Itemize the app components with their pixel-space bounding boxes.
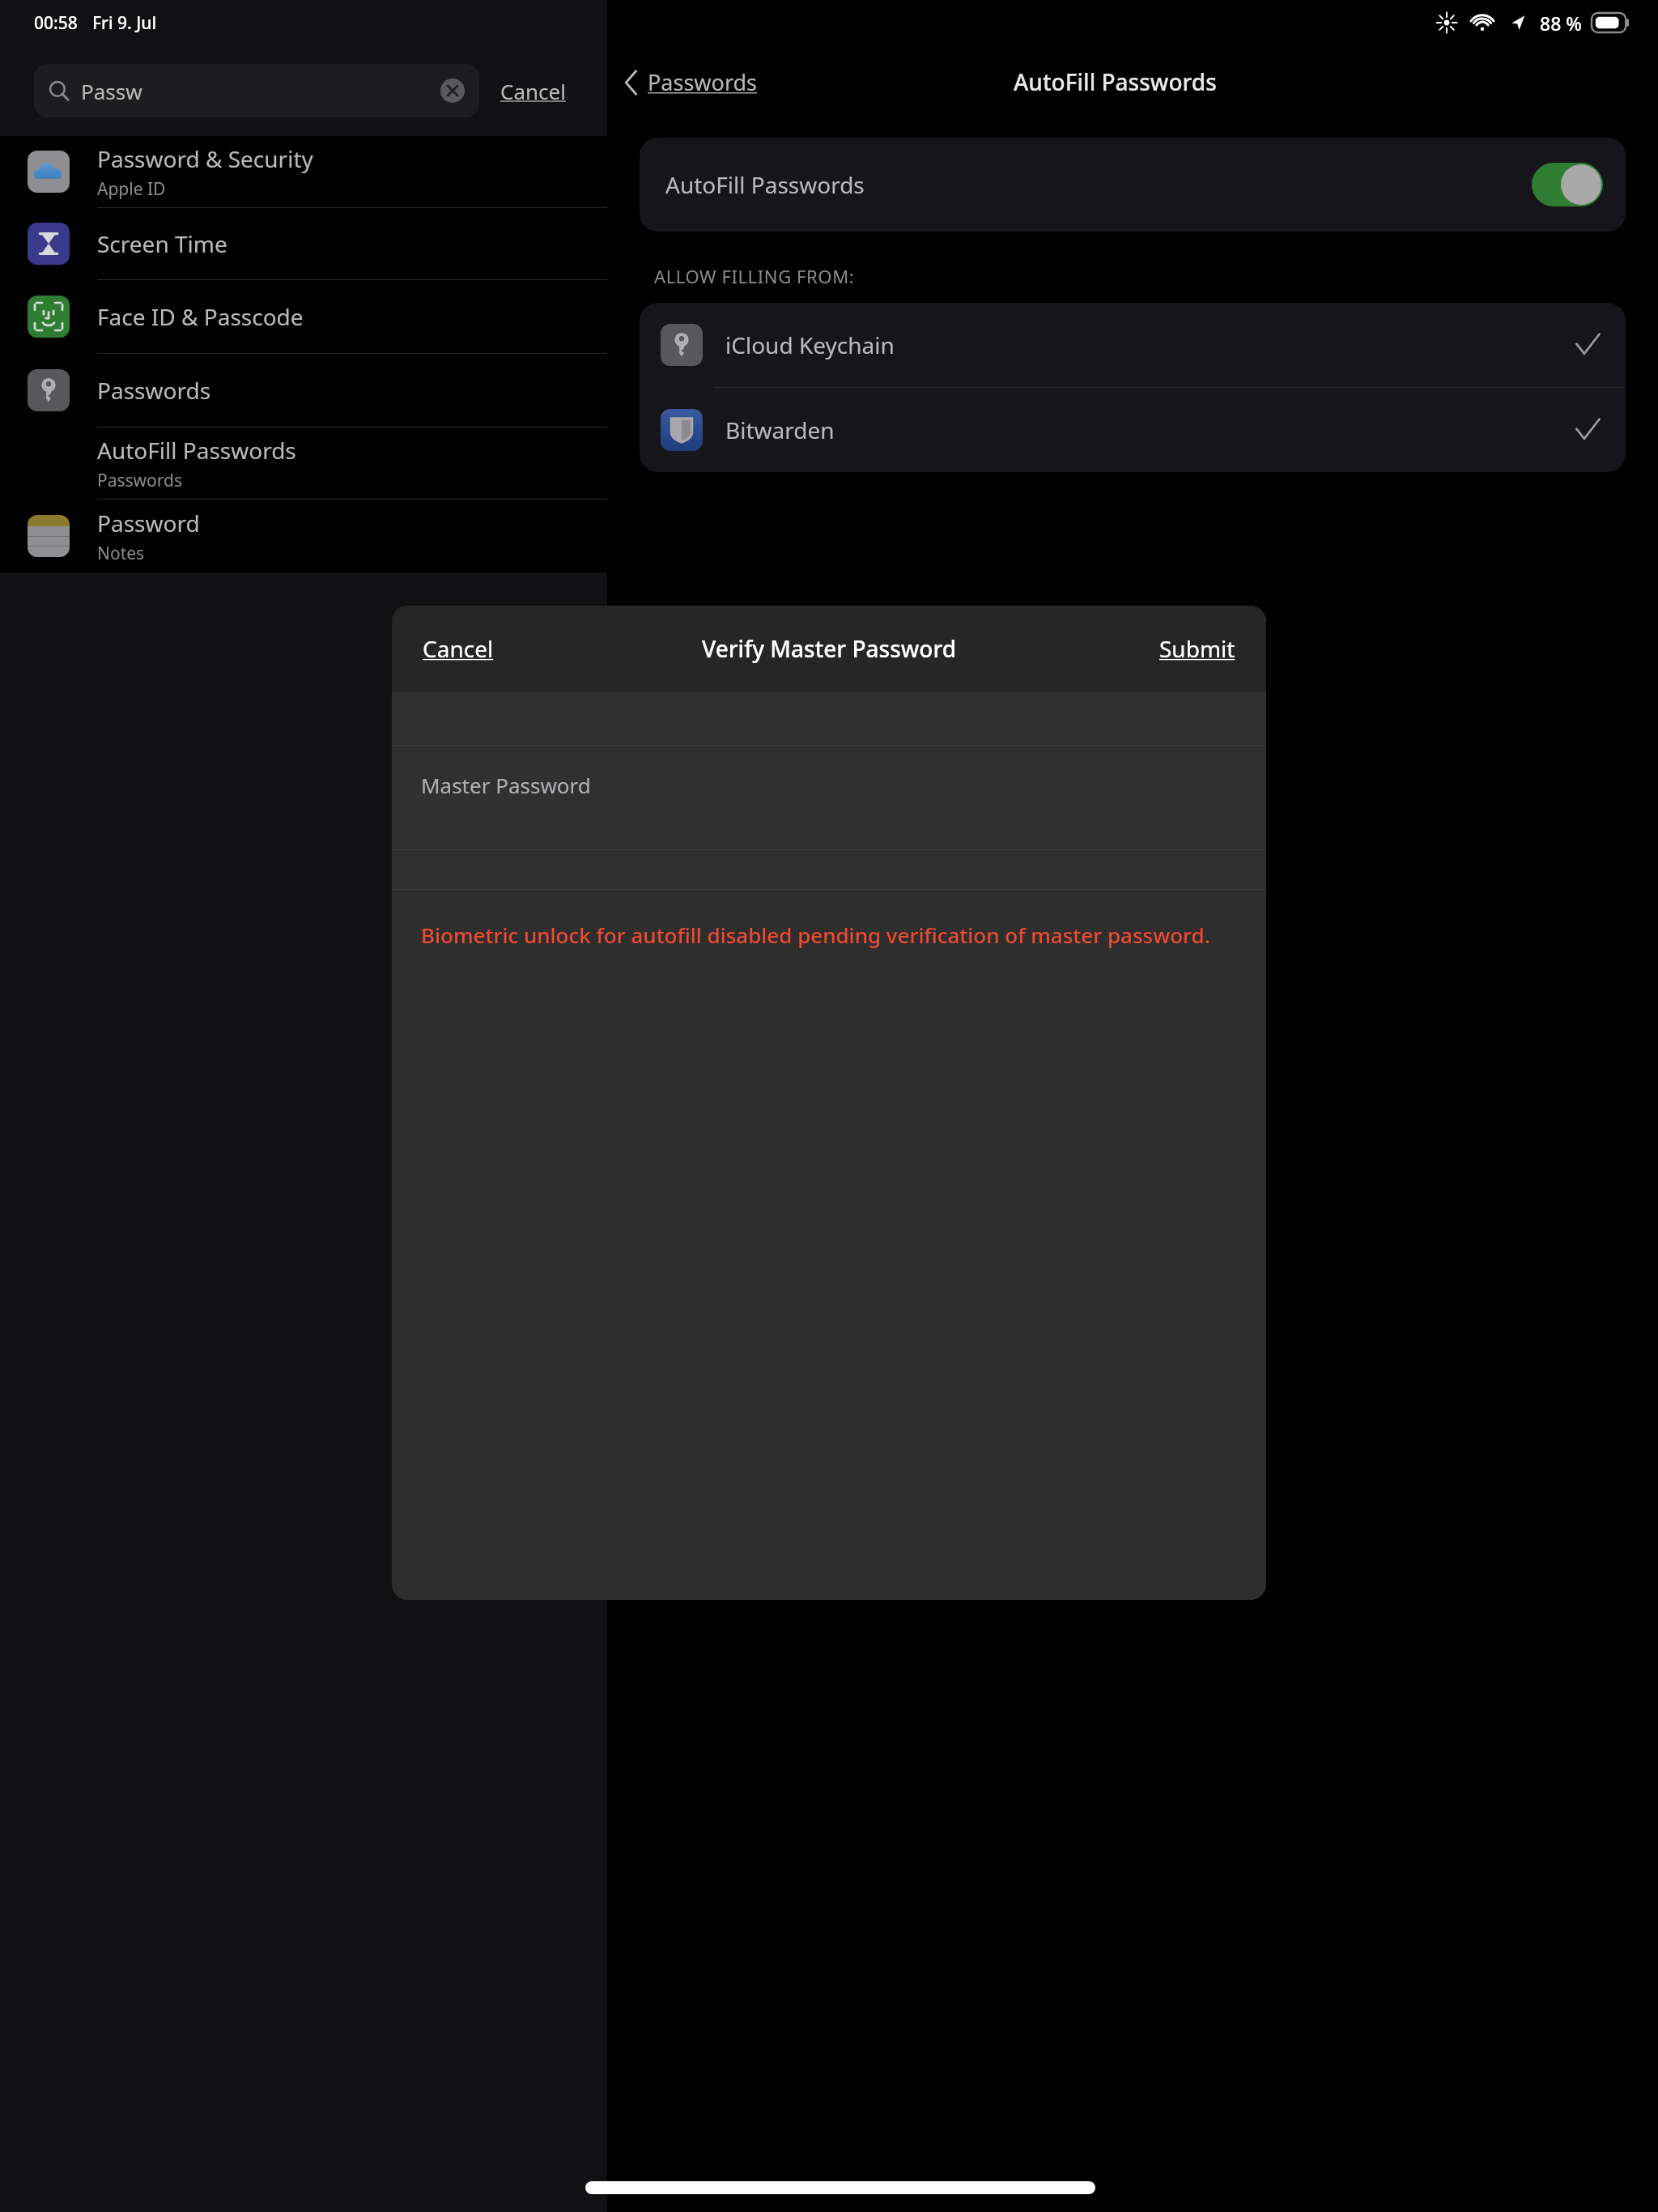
staticText: Passw bbox=[81, 77, 142, 105]
button[interactable]: AutoFill Passwords bbox=[0, 428, 607, 499]
button[interactable]: Cancel bbox=[497, 74, 569, 108]
button[interactable]: Password & Security bbox=[0, 136, 607, 207]
staticText: Screen Time bbox=[97, 228, 227, 259]
staticText: 88 % bbox=[1540, 11, 1582, 36]
button[interactable]: Bitwarden bbox=[640, 388, 1626, 472]
staticText: Submit bbox=[1159, 633, 1235, 664]
staticText: Passwords bbox=[97, 469, 183, 492]
staticText: Password bbox=[97, 508, 200, 538]
staticText: Biometric unlock for autofill disabled p… bbox=[421, 921, 1210, 949]
staticText: Bitwarden bbox=[725, 415, 835, 445]
button[interactable]: Face ID & Passcode bbox=[0, 280, 607, 353]
button[interactable]: AutoFill Passwords toggle bbox=[1532, 163, 1603, 206]
button[interactable]: Submit bbox=[1153, 627, 1242, 670]
staticText: ALLOW FILLING FROM: bbox=[654, 264, 855, 288]
staticText: Verify Master Password bbox=[702, 633, 957, 664]
staticText: 00:58 bbox=[34, 11, 78, 35]
staticText: Fri 9. Jul bbox=[92, 11, 157, 35]
button[interactable]: Screen Time bbox=[0, 208, 607, 279]
button[interactable]: iCloud Keychain bbox=[640, 303, 1626, 387]
staticText: AutoFill Passwords bbox=[97, 435, 296, 466]
staticText: Password & Security bbox=[97, 143, 313, 174]
staticText: AutoFill Passwords bbox=[665, 169, 865, 200]
staticText: Notes bbox=[97, 542, 145, 565]
button[interactable]: Passwords bbox=[0, 354, 607, 427]
staticText: Passwords bbox=[97, 375, 211, 406]
button[interactable]: Cancel bbox=[416, 627, 500, 670]
staticText: AutoFill Passwords bbox=[1014, 66, 1217, 97]
button[interactable]: Clear search bbox=[440, 79, 465, 103]
button[interactable]: AutoFill Passwords bbox=[640, 138, 1626, 232]
staticText: Cancel bbox=[500, 77, 566, 105]
button[interactable]: Password bbox=[0, 500, 607, 572]
button[interactable]: Passwords bbox=[619, 62, 763, 102]
staticText: Apple ID bbox=[97, 177, 166, 201]
staticText: Master Password bbox=[421, 771, 591, 799]
staticText: iCloud Keychain bbox=[725, 330, 895, 360]
staticText: Face ID & Passcode bbox=[97, 301, 304, 332]
button[interactable]: Passw bbox=[34, 64, 479, 117]
staticText: Passwords bbox=[648, 67, 758, 97]
button[interactable]: Master Password bbox=[392, 746, 1266, 849]
staticText: Cancel bbox=[423, 633, 494, 664]
